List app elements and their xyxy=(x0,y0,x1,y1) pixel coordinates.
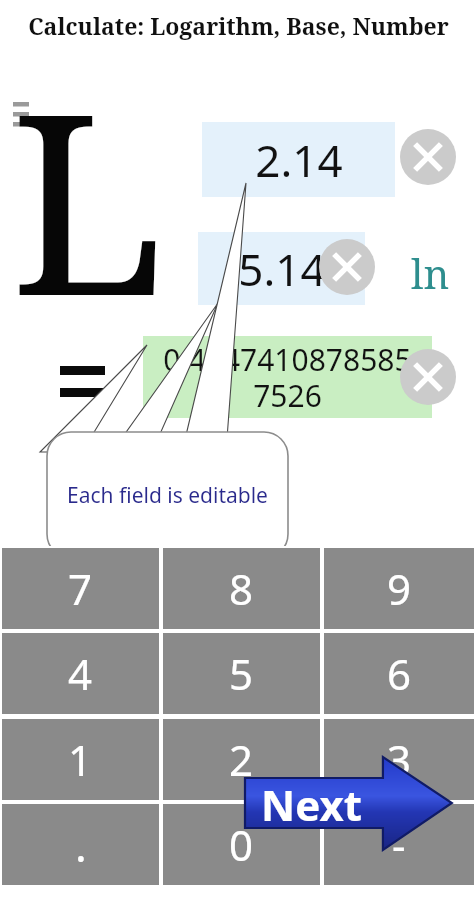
staticText: 3 xyxy=(387,731,412,788)
staticText: 0 xyxy=(229,816,254,873)
button[interactable]: 2 xyxy=(163,719,320,800)
staticText: 2 xyxy=(229,731,254,788)
button[interactable]: Clear result xyxy=(400,349,456,405)
button[interactable]: Base field xyxy=(198,232,365,305)
staticText: 4 xyxy=(68,645,93,702)
button[interactable]: Clear number xyxy=(400,129,456,185)
staticText: 7 xyxy=(68,560,93,617)
button[interactable]: . xyxy=(2,804,159,885)
staticText: 1 xyxy=(68,731,93,788)
button[interactable]: - xyxy=(324,804,474,885)
button[interactable]: Menu xyxy=(8,96,34,136)
staticText: 5 xyxy=(229,645,254,702)
button[interactable]: 8 xyxy=(163,548,320,629)
button[interactable]: 7 xyxy=(2,548,159,629)
button[interactable]: 1 xyxy=(2,719,159,800)
button[interactable]: ln xyxy=(400,246,460,294)
button[interactable]: 9 xyxy=(324,548,474,629)
staticText: ln xyxy=(411,246,450,294)
button[interactable]: Each field is editable xyxy=(47,432,288,558)
button[interactable]: 0 xyxy=(163,804,320,885)
staticText: - xyxy=(392,816,406,873)
button[interactable]: 4 xyxy=(2,633,159,714)
staticText: 9 xyxy=(387,560,412,617)
staticText: 2.14 xyxy=(255,130,343,190)
button[interactable]: 3 xyxy=(324,719,474,800)
button[interactable]: Number field xyxy=(202,122,395,197)
staticText: 5.14 xyxy=(238,239,326,299)
button[interactable]: 5 xyxy=(163,633,320,714)
staticText: 0.4647410878585 7526 xyxy=(163,339,412,416)
staticText: . xyxy=(75,815,87,875)
staticText: 8 xyxy=(229,560,254,617)
button[interactable]: Result field xyxy=(143,336,432,418)
staticText: Each field is editable xyxy=(67,481,268,510)
staticText: Calculate: Logarithm, Base, Number xyxy=(28,10,449,41)
staticText: Next xyxy=(261,776,362,833)
staticText: 6 xyxy=(387,645,412,702)
button[interactable]: 6 xyxy=(324,633,474,714)
button[interactable]: Clear base xyxy=(319,239,375,295)
staticText: Log xyxy=(10,28,240,328)
button[interactable]: Next xyxy=(243,754,455,854)
